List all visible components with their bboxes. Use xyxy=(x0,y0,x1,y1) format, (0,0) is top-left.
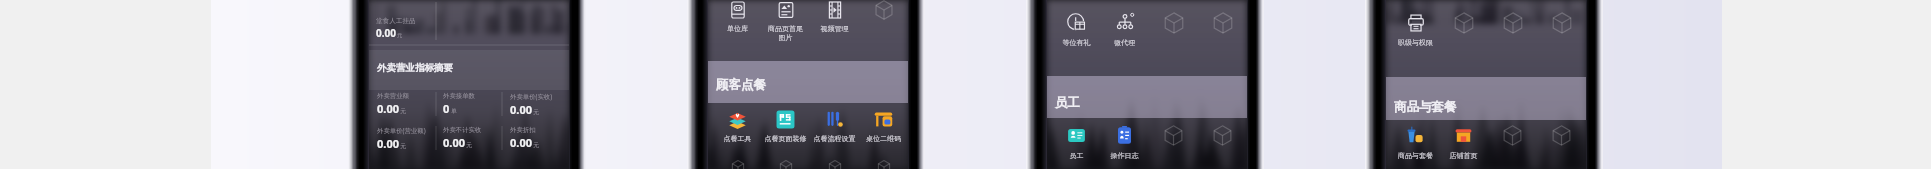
staticText: 外卖不计实收 xyxy=(443,126,482,134)
button[interactable]: 更多 xyxy=(1488,12,1537,60)
button[interactable]: 商品与套餐 xyxy=(1391,125,1440,169)
button[interactable]: 外卖单价(营业额) xyxy=(369,126,435,151)
staticText: 0.00 xyxy=(377,101,399,116)
staticText: 店铺首页 xyxy=(1439,151,1488,160)
staticText: 桌位二维码 xyxy=(859,134,908,143)
staticText: 商品与套餐 xyxy=(1391,151,1440,160)
button[interactable]: 点餐工具 xyxy=(713,108,762,156)
button[interactable]: 店铺首页 xyxy=(1439,125,1488,169)
button[interactable]: 员工 xyxy=(1052,125,1101,169)
button[interactable]: 更多 xyxy=(761,160,810,169)
staticText: 元 xyxy=(397,32,403,39)
staticText: 点餐工具 xyxy=(713,134,762,143)
button[interactable]: 职级与权限 xyxy=(1391,12,1440,60)
button[interactable]: 顾客点餐 xyxy=(716,77,766,93)
button[interactable]: 商品与套餐 xyxy=(1394,99,1457,115)
staticText: 外卖营业额 xyxy=(377,92,409,100)
staticText: 员工 xyxy=(1052,151,1101,160)
button[interactable]: 更多 xyxy=(1439,12,1488,60)
staticText: 外卖折扣 xyxy=(510,126,536,134)
staticText: 视频管理 xyxy=(810,24,859,33)
button[interactable]: 更多 xyxy=(810,160,859,169)
button[interactable]: 更多 xyxy=(859,0,908,46)
staticText: 0 xyxy=(443,101,450,116)
button[interactable]: 外卖不计实收 xyxy=(435,126,502,150)
staticText: 操作日志 xyxy=(1100,151,1149,160)
button[interactable]: 点餐流程设置 xyxy=(810,108,859,156)
button[interactable]: 更多 xyxy=(1537,125,1586,169)
button[interactable]: 更多 xyxy=(1149,125,1198,169)
button[interactable]: 桌位二维码 xyxy=(859,108,908,156)
button[interactable]: 外卖折扣 xyxy=(502,126,569,150)
button[interactable]: 外卖营业指标摘要 xyxy=(377,62,453,74)
staticText: 0.00 xyxy=(510,102,532,117)
button[interactable]: 更多 xyxy=(1488,125,1537,169)
staticText: 单 xyxy=(451,107,457,115)
staticText: 0.00 xyxy=(510,135,532,150)
button[interactable]: 员工 xyxy=(1055,95,1080,111)
staticText: 元 xyxy=(466,141,472,149)
button[interactable]: 外卖营业额 xyxy=(369,92,435,116)
button[interactable]: 更多 xyxy=(1537,12,1586,60)
button[interactable]: 等位有礼 xyxy=(1052,12,1101,60)
staticText: 元 xyxy=(400,107,406,115)
button[interactable]: 单位库 xyxy=(713,0,762,46)
button[interactable]: 外卖单价(实收) xyxy=(502,92,569,117)
button[interactable]: 更多 xyxy=(1198,12,1247,60)
staticText: 元 xyxy=(400,142,406,150)
button[interactable]: 更多 xyxy=(713,160,762,169)
staticText: 元 xyxy=(533,108,539,116)
staticText: 点餐页面装修 xyxy=(761,134,810,143)
button[interactable]: 微代理 xyxy=(1100,12,1149,60)
staticText: 外卖接单数 xyxy=(443,92,475,100)
staticText: 元 xyxy=(533,141,539,149)
staticText: 等位有礼 xyxy=(1052,38,1101,47)
button[interactable]: 更多 xyxy=(1198,125,1247,169)
button[interactable]: 商品页首尾 图片 xyxy=(761,0,810,46)
staticText: 堂食人工挂品 xyxy=(376,17,416,25)
staticText: 微代理 xyxy=(1100,38,1149,47)
button[interactable]: 外卖接单数 xyxy=(435,92,502,116)
button[interactable]: 更多 xyxy=(859,160,908,169)
staticText: 职级与权限 xyxy=(1391,38,1440,47)
staticText: 0.00 xyxy=(376,26,396,40)
staticText: 点餐流程设置 xyxy=(810,134,859,143)
staticText: 外卖单价(营业额) xyxy=(377,126,426,135)
staticText: 0.00 xyxy=(377,136,399,151)
staticText: 外卖单价(实收) xyxy=(510,92,553,101)
staticText: 0.00 xyxy=(443,135,465,150)
button[interactable]: 点餐页面装修 xyxy=(761,108,810,156)
button[interactable]: 视频管理 xyxy=(810,0,859,46)
button[interactable]: 堂食人工挂品 xyxy=(376,17,416,40)
staticText: 单位库 xyxy=(713,24,762,33)
button[interactable]: 更多 xyxy=(1149,12,1198,60)
button[interactable]: 操作日志 xyxy=(1100,125,1149,169)
staticText: 商品页首尾 图片 xyxy=(761,24,810,42)
